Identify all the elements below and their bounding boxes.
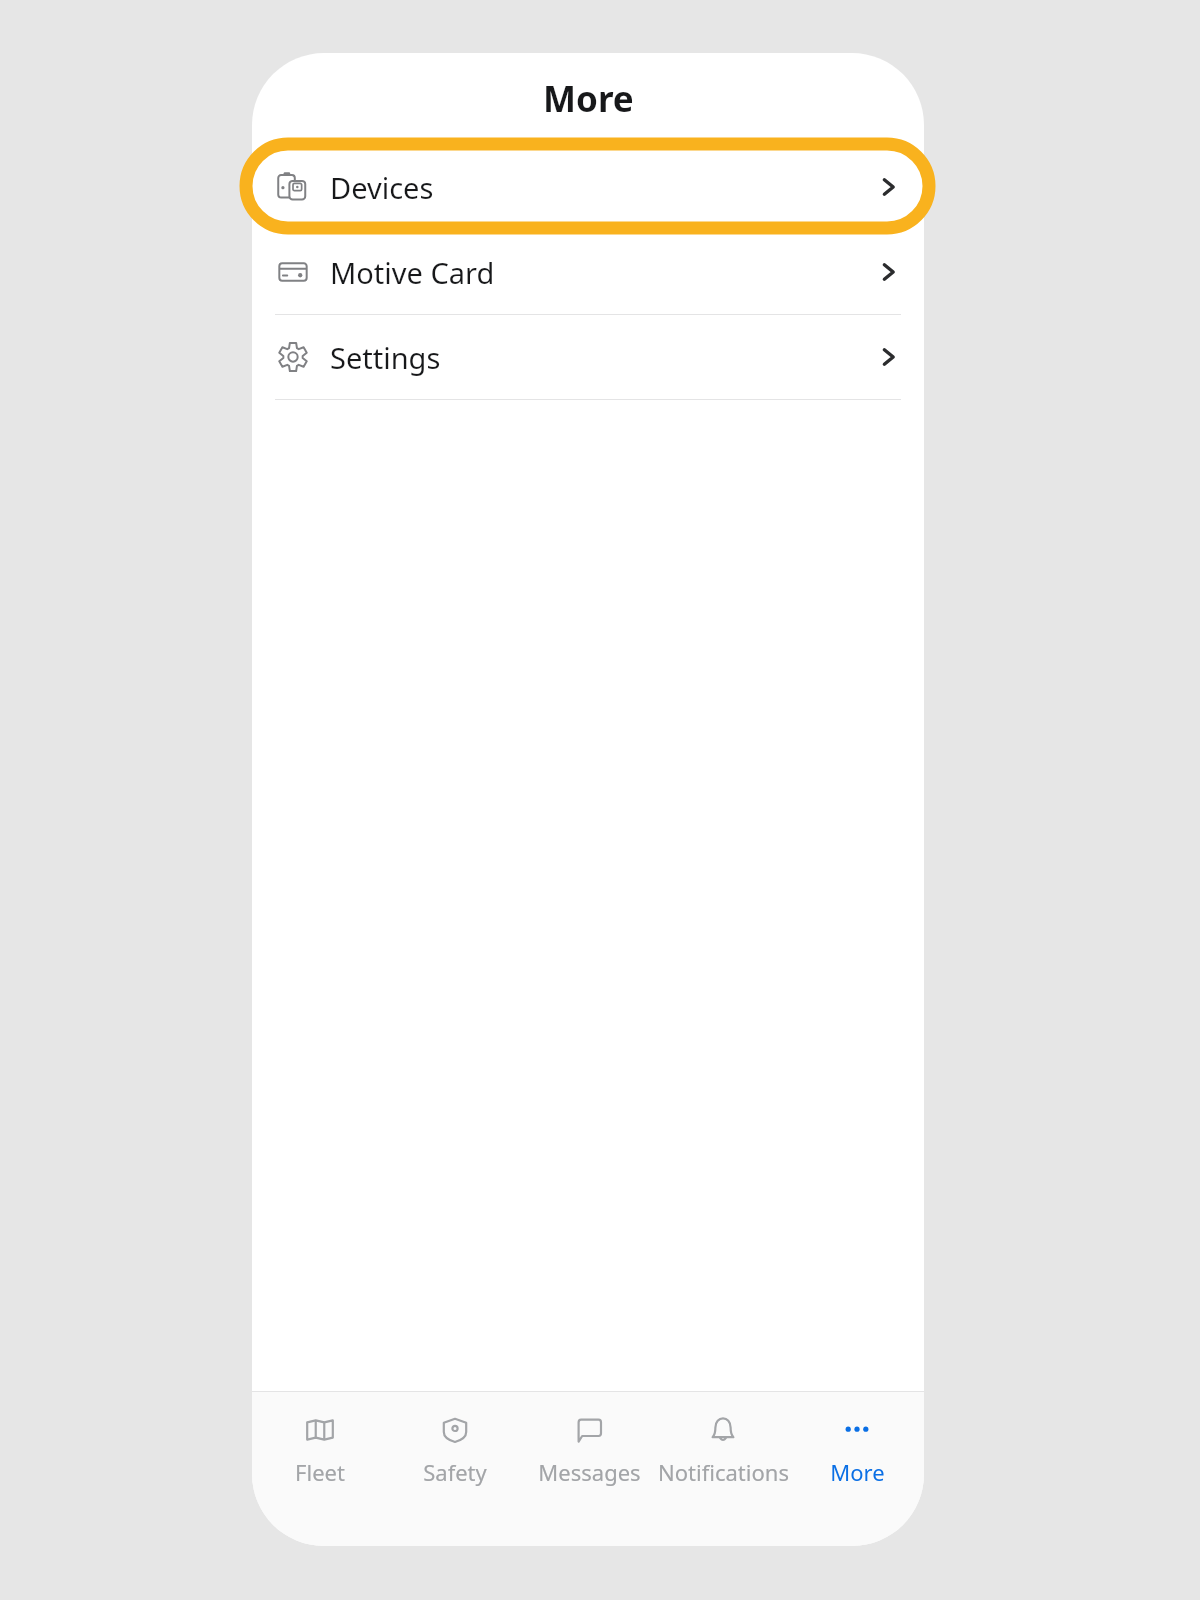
staticText: Notifications (658, 1457, 789, 1487)
button[interactable]: Messages (522, 1392, 656, 1504)
button[interactable]: Motive Card (252, 230, 924, 314)
button[interactable]: Notifications (656, 1392, 790, 1504)
button[interactable]: Safety (387, 1392, 522, 1504)
staticText: Motive Card (330, 253, 495, 292)
staticText: More (830, 1457, 885, 1487)
staticText: Messages (538, 1457, 641, 1487)
staticText: Devices (330, 168, 434, 207)
button[interactable]: More (790, 1392, 924, 1504)
staticText: Safety (423, 1457, 487, 1487)
staticText: Fleet (295, 1457, 345, 1487)
button[interactable]: Settings (252, 315, 924, 399)
staticText: Settings (330, 338, 441, 377)
button[interactable]: Devices (252, 145, 924, 229)
staticText: More (543, 75, 634, 123)
button[interactable]: Fleet (252, 1392, 387, 1504)
